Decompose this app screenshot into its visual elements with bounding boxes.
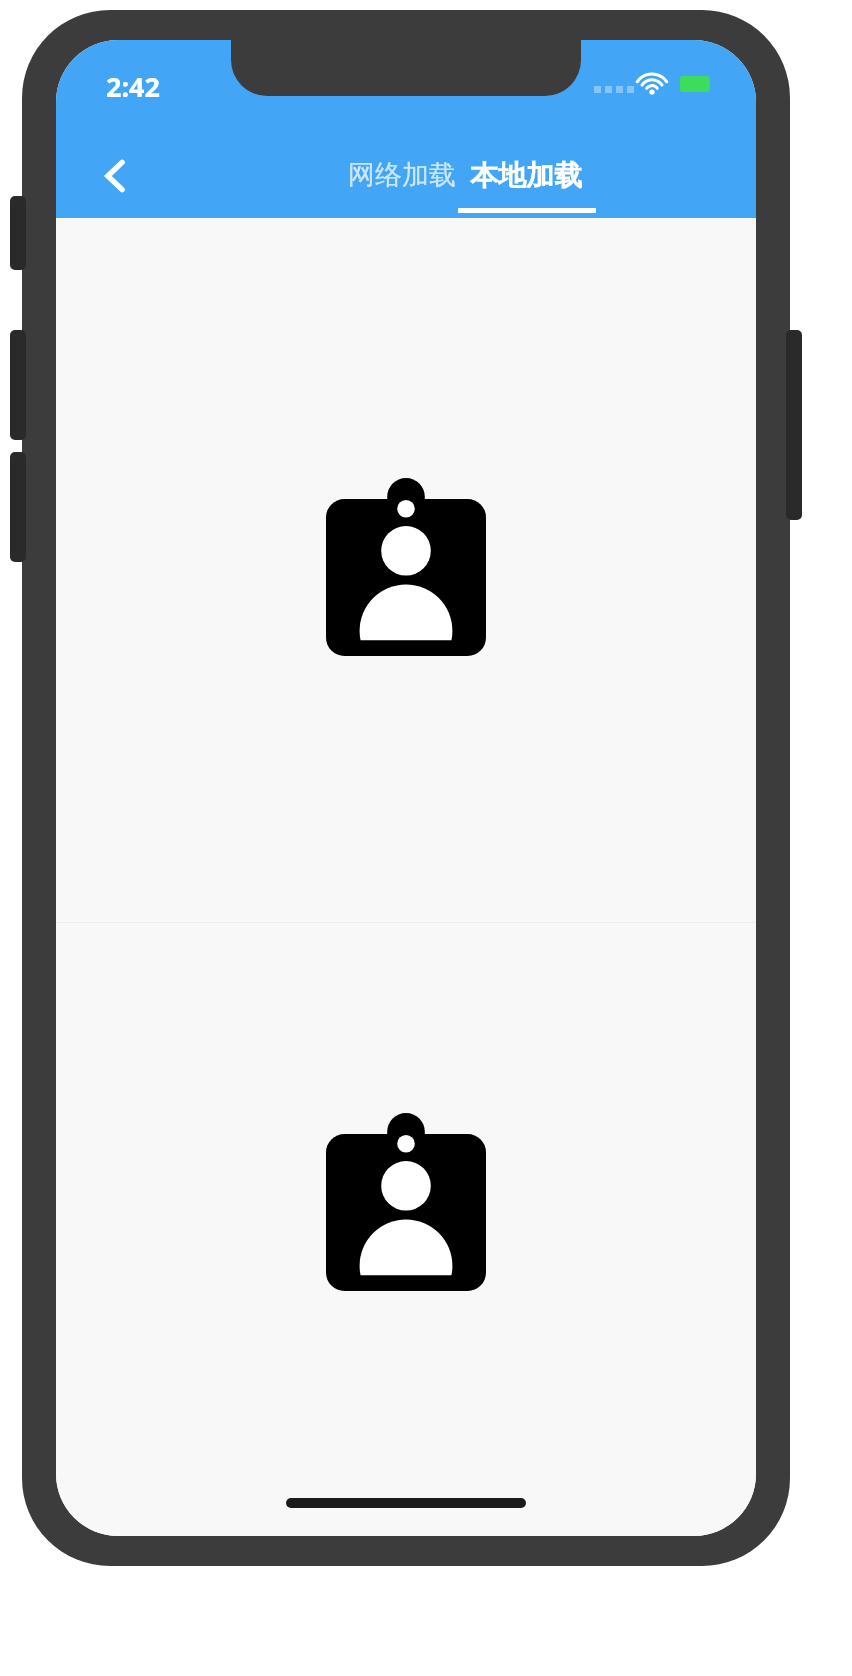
staticText: DEBUG: [714, 40, 756, 69]
staticText: 2:42: [106, 68, 160, 105]
staticText: 网络加载: [348, 158, 456, 192]
button[interactable]: Back: [80, 140, 152, 212]
staticText: 本地加载: [470, 158, 582, 193]
button[interactable]: 网络加载: [322, 158, 482, 218]
button[interactable]: 本地加载: [456, 158, 596, 218]
